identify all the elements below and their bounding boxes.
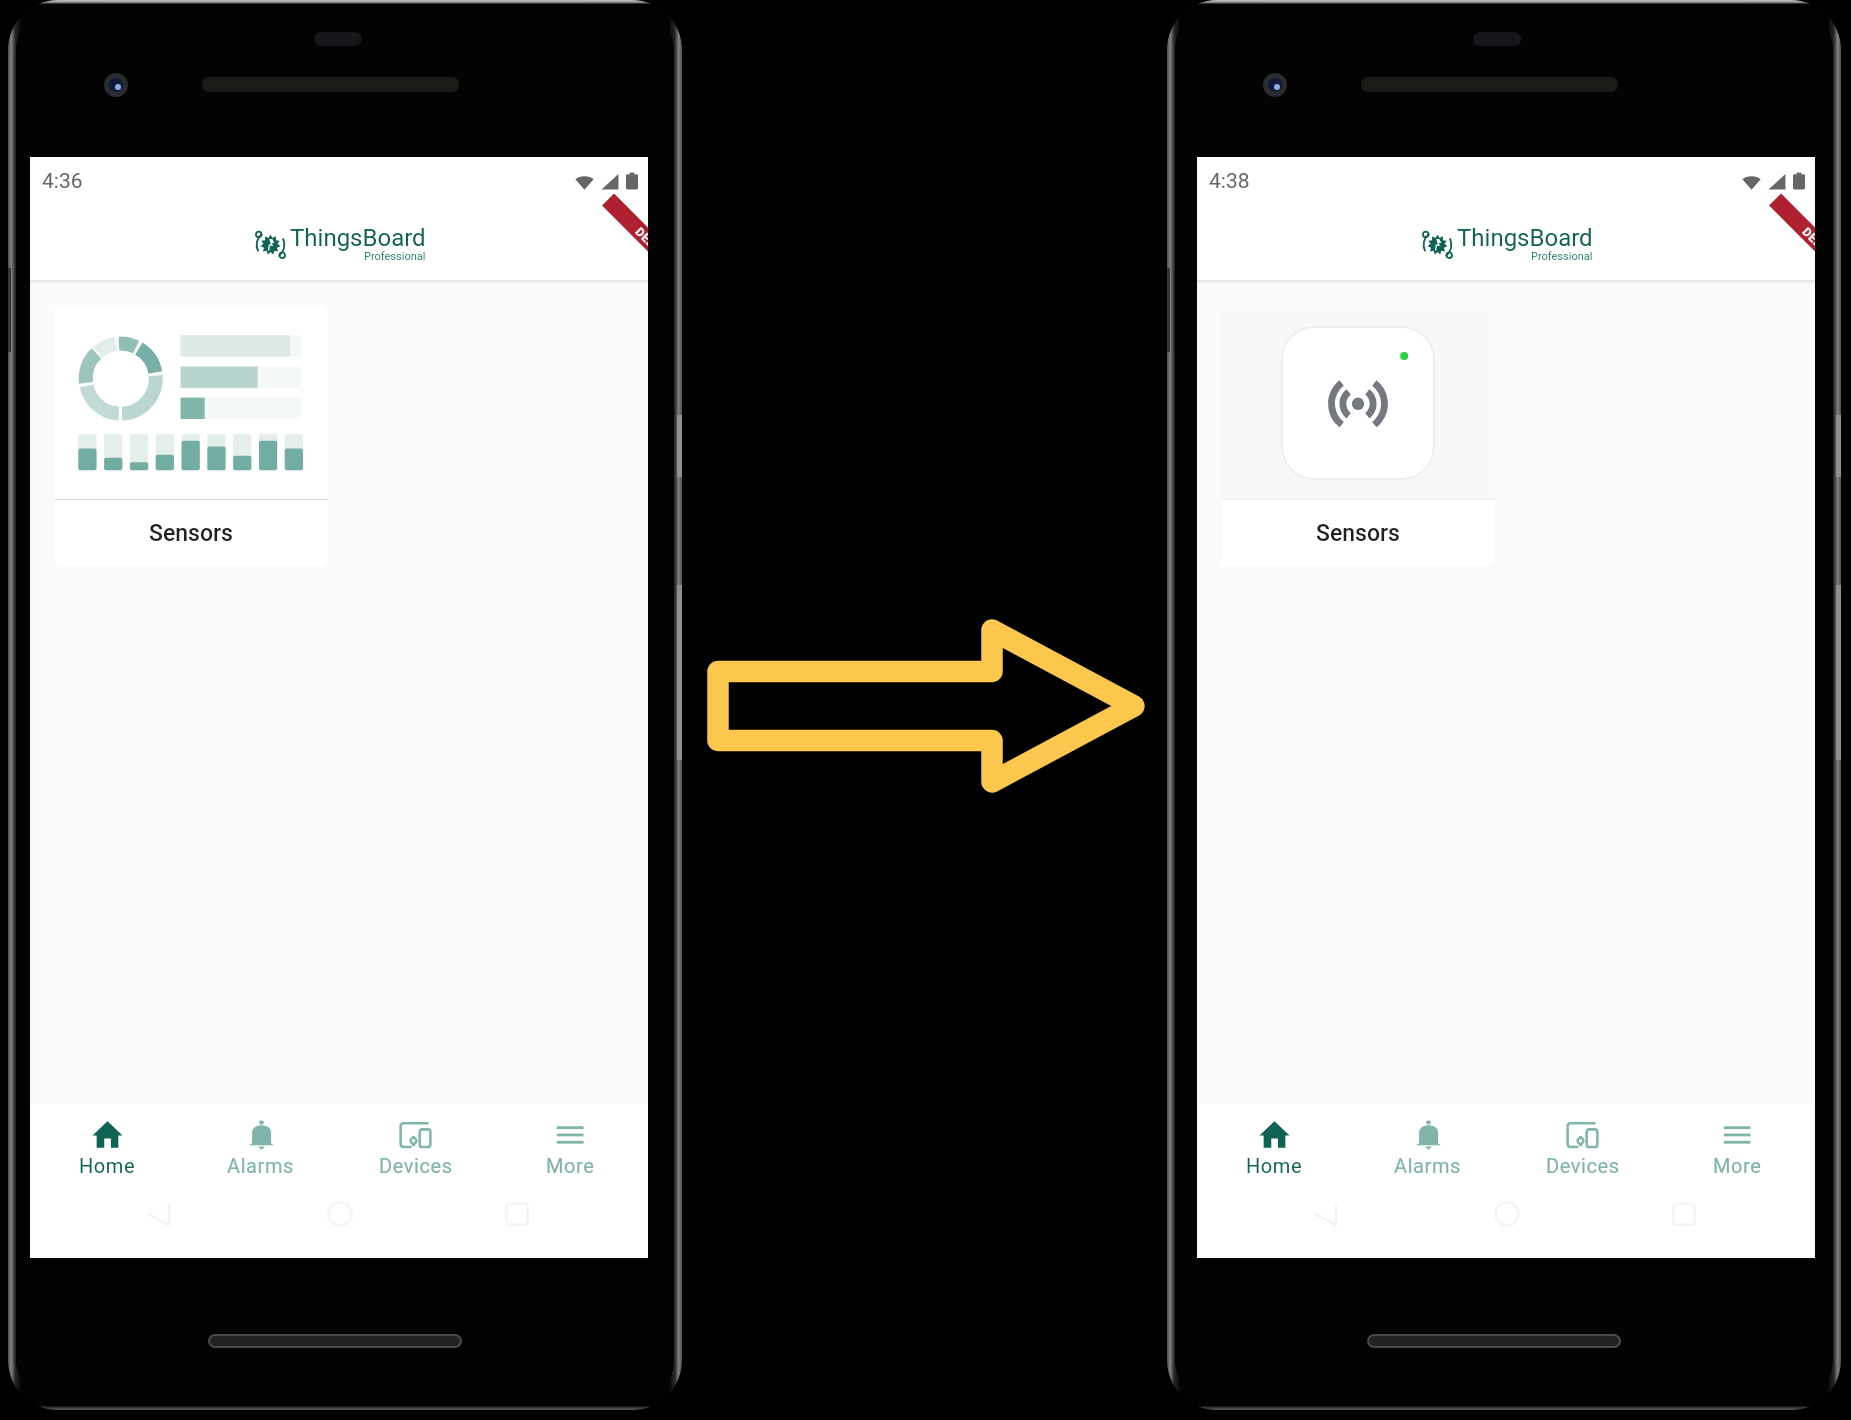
staticText: Sensors xyxy=(1316,520,1400,547)
staticText: ThingsBoard xyxy=(1457,224,1593,252)
staticText: Professional xyxy=(364,250,426,263)
staticText: Devices xyxy=(1546,1154,1620,1177)
button[interactable]: Sensors xyxy=(1221,305,1495,566)
button[interactable]: Alarms xyxy=(184,1104,338,1191)
staticText: Home xyxy=(1246,1154,1303,1177)
staticText: DEBUG xyxy=(1799,225,1815,264)
staticText: More xyxy=(546,1154,595,1177)
button[interactable]: Sensors xyxy=(54,305,328,566)
button[interactable]: Devices xyxy=(1505,1104,1660,1191)
staticText: Home xyxy=(79,1154,136,1177)
staticText: 4:38 xyxy=(1209,169,1250,194)
button[interactable]: More xyxy=(493,1104,648,1191)
staticText: DEBUG xyxy=(632,225,648,264)
staticText: Devices xyxy=(379,1154,453,1177)
staticText: Alarms xyxy=(227,1154,295,1177)
staticText: ThingsBoard xyxy=(290,224,426,252)
staticText: Sensors xyxy=(149,520,233,547)
staticText: Alarms xyxy=(1394,1154,1462,1177)
button[interactable]: Devices xyxy=(338,1104,493,1191)
button[interactable]: Home xyxy=(1197,1104,1351,1191)
button[interactable]: Home xyxy=(30,1104,184,1191)
staticText: 4:36 xyxy=(42,169,83,194)
staticText: More xyxy=(1713,1154,1762,1177)
staticText: Professional xyxy=(1531,250,1593,263)
button[interactable]: More xyxy=(1660,1104,1815,1191)
button[interactable]: Alarms xyxy=(1351,1104,1505,1191)
